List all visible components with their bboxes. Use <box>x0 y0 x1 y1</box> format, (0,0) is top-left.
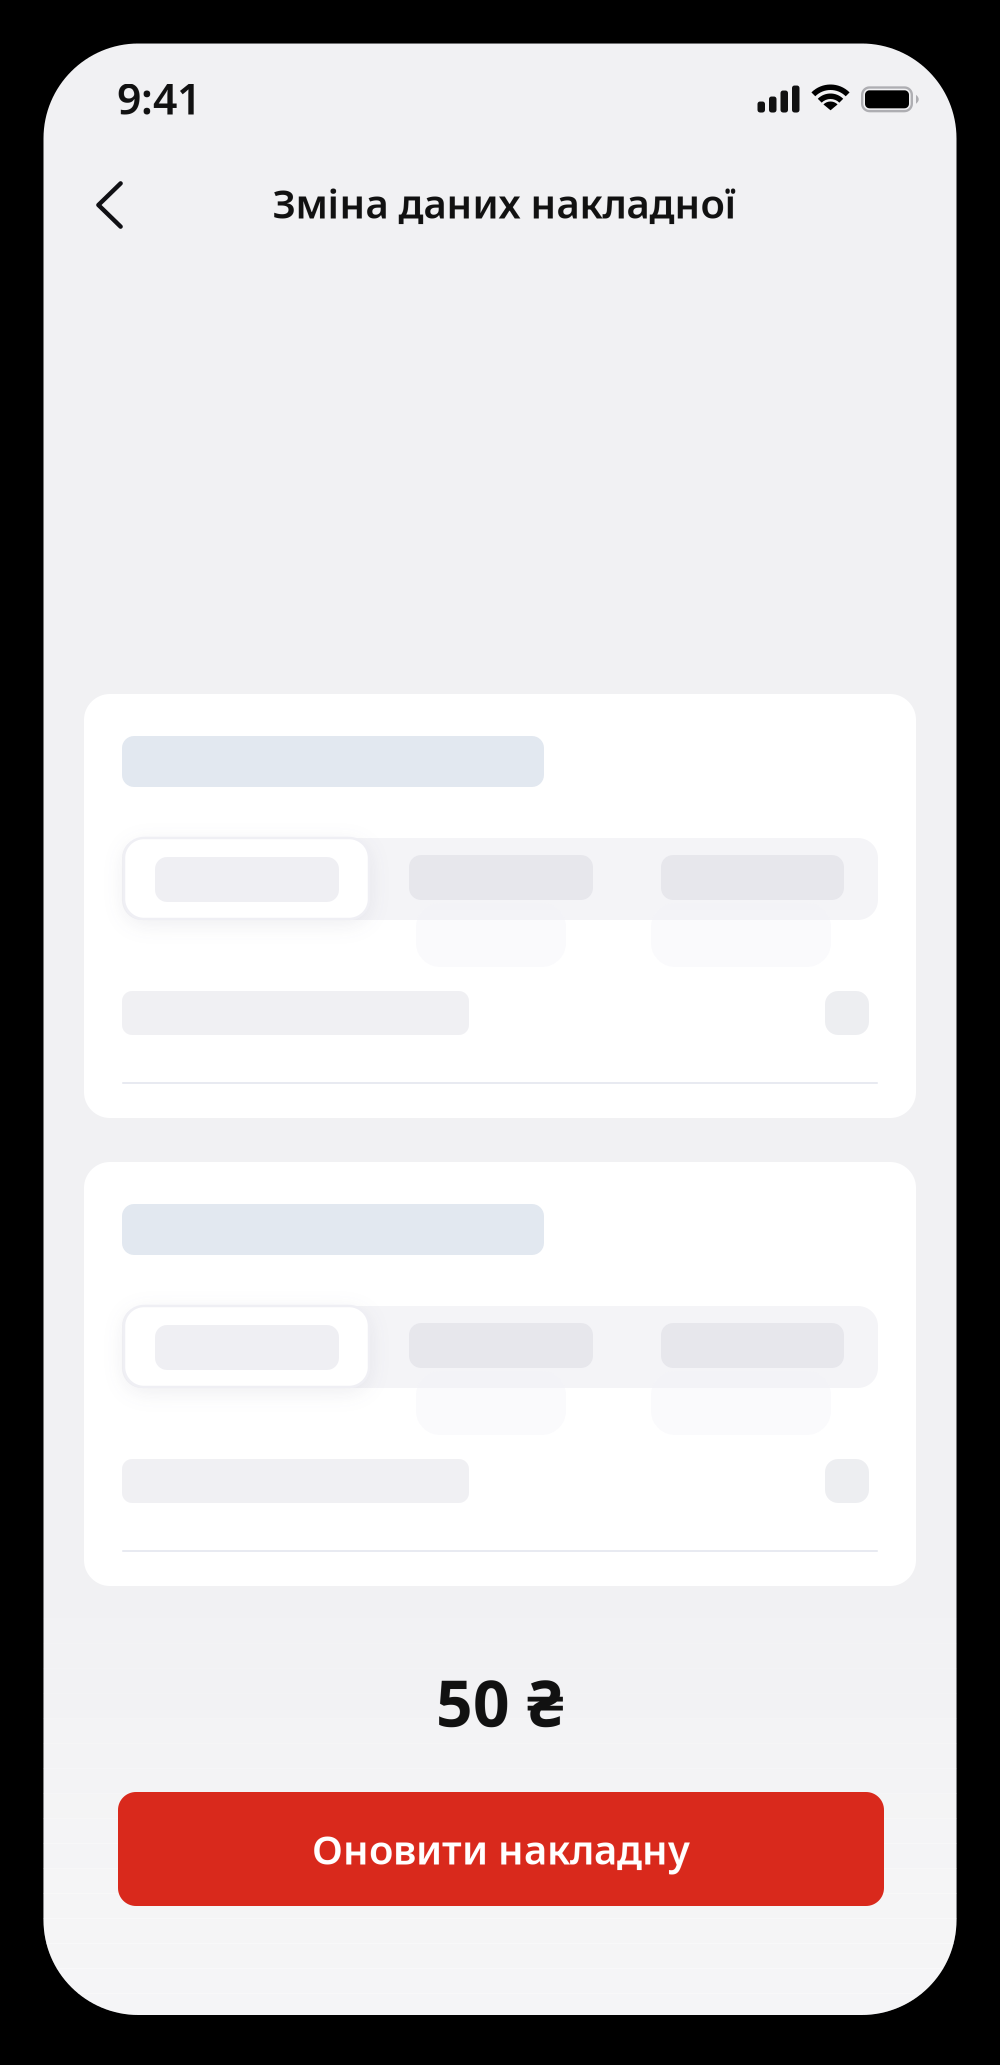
staticText: 50 ₴ <box>436 1659 564 1744</box>
staticText: Зміна даних накладної <box>272 176 735 229</box>
button[interactable]: Оновити накладну <box>118 1792 884 1906</box>
button[interactable]: Back <box>87 175 131 235</box>
staticText: 9:41 <box>117 70 201 126</box>
staticText: Оновити накладну <box>312 1822 690 1875</box>
